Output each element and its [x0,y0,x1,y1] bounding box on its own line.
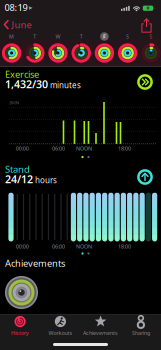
button[interactable]: M [0,29,23,62]
staticText: 06:00 [52,243,65,250]
staticText: 18:00 [118,243,131,250]
staticText: W [55,33,60,40]
staticText: Workouts [48,329,72,337]
staticText: History [11,329,29,337]
staticText: Achievements [83,329,118,337]
staticText: 00:00 [16,145,29,152]
staticText: 00:00 [16,243,29,250]
staticText: NOON [76,243,92,250]
staticText: NOON [76,145,92,152]
staticText: 24/12 [5,172,33,186]
staticText: Sharing [132,329,150,337]
staticText: 06:00 [52,145,65,152]
staticText: Stand [5,163,30,175]
button[interactable]: Workouts [40,315,80,338]
button[interactable]: T [23,29,46,62]
staticText: T [80,33,83,40]
staticText: M [9,33,14,40]
button[interactable] [136,73,154,91]
staticText: T [33,33,36,40]
button[interactable]: T [70,29,93,62]
staticText: F [103,33,106,40]
staticText: Exercise [5,68,39,80]
staticText: June [11,18,31,31]
staticText: S [149,33,152,40]
button[interactable]: Achievements [81,315,121,338]
staticText: S [126,33,129,40]
staticText: 1,432/30 [5,77,48,91]
staticText: Achievements [5,257,65,269]
staticText: 18:00 [118,145,131,152]
button[interactable] [136,168,154,186]
button[interactable]: S [116,29,139,62]
button[interactable] [139,17,153,34]
button[interactable]: W [46,29,69,62]
staticText: 08:19 [4,1,27,14]
button[interactable]: June [2,17,38,32]
button[interactable]: S [139,29,161,62]
button[interactable]: F [93,29,116,62]
staticText: minutes [50,80,81,90]
button[interactable] [2,273,40,311]
staticText: hours [35,175,57,185]
button[interactable]: Sharing [121,315,161,338]
button[interactable]: History [0,315,40,338]
staticText: 2MIN [9,100,19,105]
